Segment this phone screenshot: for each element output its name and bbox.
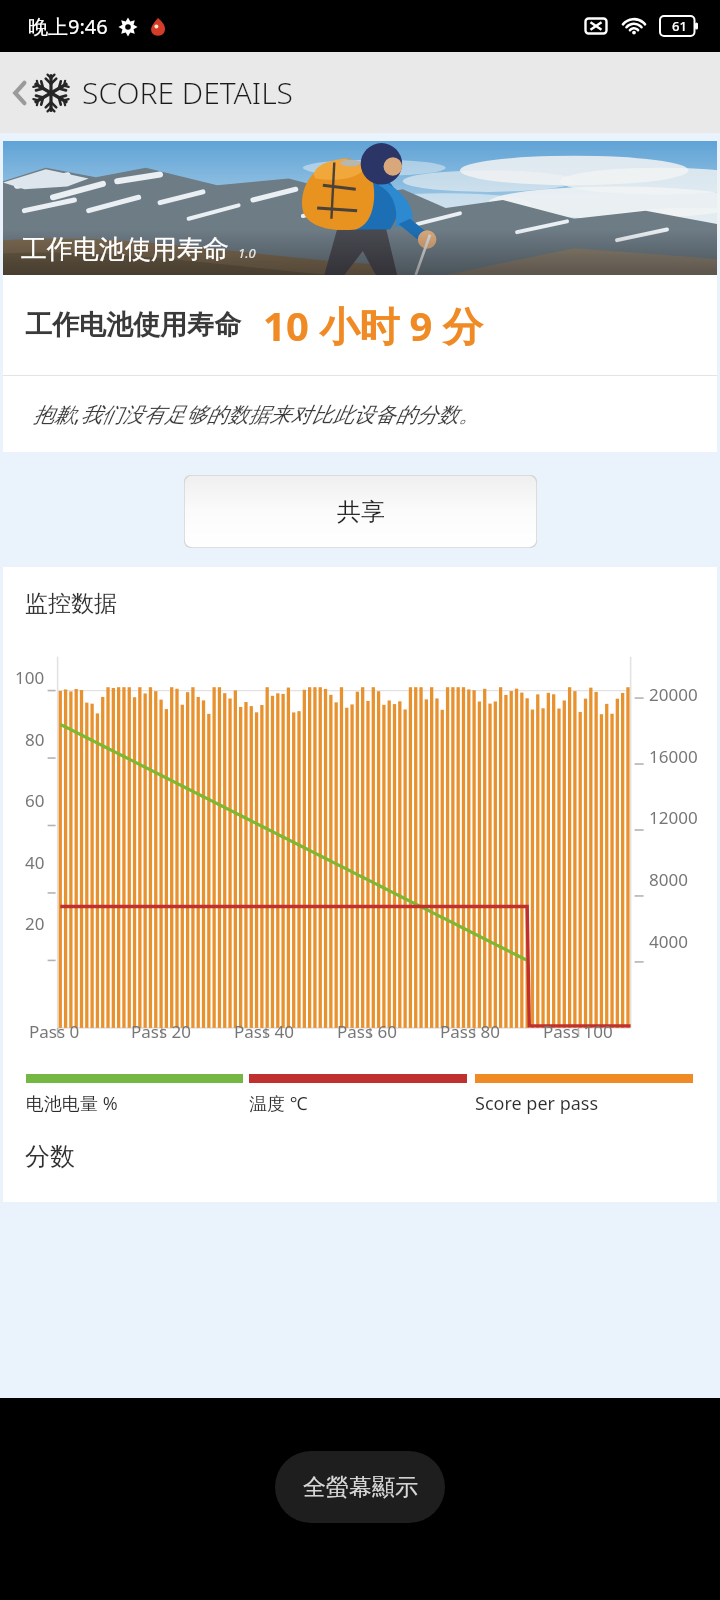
- staticText: 8000: [649, 868, 688, 891]
- staticText: 4000: [649, 930, 688, 953]
- staticText: 工作电池使用寿命: [21, 233, 229, 266]
- button[interactable]: Back: [0, 52, 720, 133]
- staticText: Score per pass: [475, 1091, 599, 1116]
- staticText: 电池电量 %: [26, 1091, 118, 1116]
- button[interactable]: 共享: [184, 475, 537, 548]
- staticText: 20: [25, 912, 45, 935]
- staticText: 20000: [649, 683, 698, 706]
- staticText: 12000: [649, 806, 698, 829]
- staticText: 80: [25, 728, 45, 751]
- button[interactable]: 工作电池使用寿命: [3, 141, 717, 275]
- staticText: Pass 80: [440, 1020, 500, 1043]
- button[interactable]: 温度 ℃: [249, 1074, 467, 1116]
- staticText: 工作电池使用寿命: [25, 308, 241, 342]
- staticText: 61: [672, 17, 687, 35]
- staticText: 1.0: [238, 244, 256, 262]
- staticText: Pass 100: [543, 1020, 613, 1043]
- button[interactable]: 全螢幕顯示: [275, 1451, 445, 1523]
- staticText: Pass 40: [234, 1020, 294, 1043]
- button[interactable]: 电池电量 %: [26, 1074, 243, 1116]
- staticText: SCORE DETAILS: [82, 72, 293, 113]
- staticText: 40: [25, 851, 45, 874]
- other: Back: [10, 76, 30, 110]
- staticText: 温度 ℃: [249, 1091, 308, 1116]
- staticText: 共享: [337, 497, 385, 527]
- staticText: 10 小时 9 分: [263, 298, 483, 353]
- staticText: 监控数据: [25, 589, 117, 618]
- staticText: 16000: [649, 745, 698, 768]
- staticText: Pass 20: [131, 1020, 191, 1043]
- staticText: Pass 60: [337, 1020, 397, 1043]
- staticText: 抱歉,我们没有足够的数据来对比此设备的分数。: [33, 400, 480, 429]
- staticText: 晚上9:46: [28, 13, 108, 40]
- staticText: Pass 0: [29, 1020, 80, 1043]
- staticText: 全螢幕顯示: [303, 1473, 418, 1502]
- staticText: 100: [15, 666, 45, 689]
- button[interactable]: Score per pass: [475, 1074, 693, 1116]
- staticText: 60: [25, 789, 45, 812]
- staticText: 分数: [25, 1141, 75, 1172]
